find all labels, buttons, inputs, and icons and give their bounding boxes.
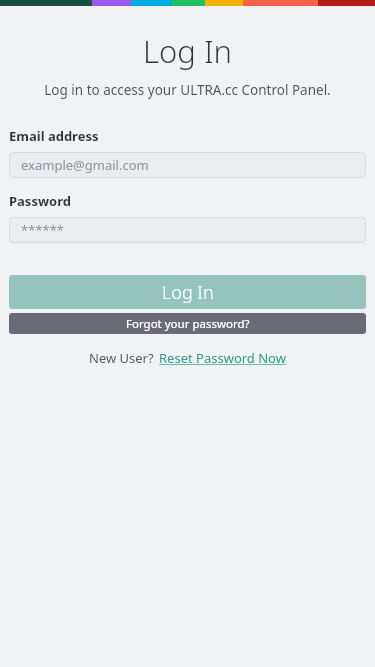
staticText: Log In	[143, 30, 232, 72]
staticText: Email address	[9, 127, 99, 145]
staticText: Reset Password Now	[159, 349, 286, 367]
staticText: Forgot your password?	[126, 316, 250, 332]
button[interactable]: Forgot your password?	[9, 313, 366, 334]
staticText: Log In	[162, 280, 214, 305]
staticText: Log in to access your ULTRA.cc Control P…	[44, 81, 331, 99]
button[interactable]: Reset Password Now	[159, 349, 286, 367]
staticText: example@gmail.com	[21, 156, 149, 174]
button[interactable]: ******	[9, 217, 366, 243]
staticText: New User?	[89, 349, 154, 367]
button[interactable]: example@gmail.com	[9, 152, 366, 178]
staticText: Password	[9, 192, 71, 210]
staticText: ******	[21, 221, 64, 239]
button[interactable]: Log In	[9, 275, 366, 309]
